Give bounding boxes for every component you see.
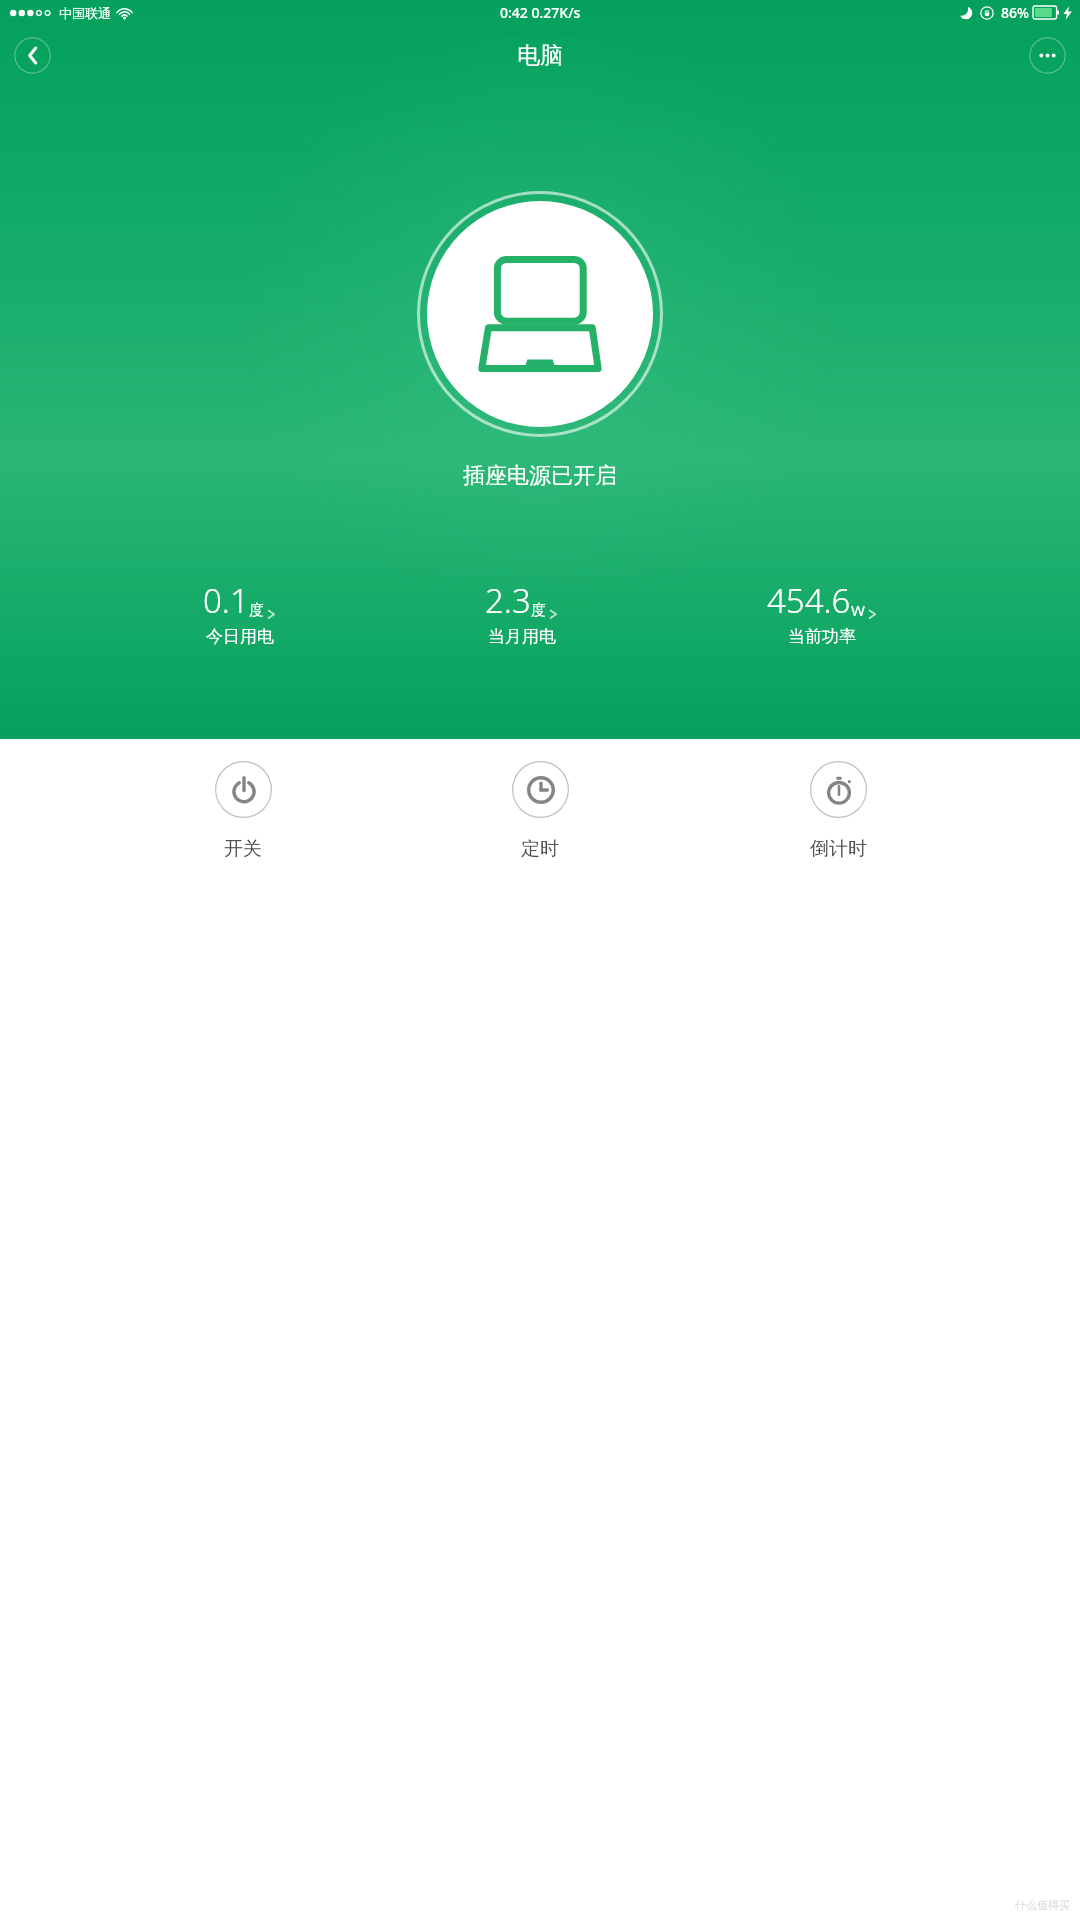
staticText: 插座电源已开启 xyxy=(463,462,617,490)
staticText: 0:42 0.27K/s xyxy=(500,3,581,22)
staticText: 2.3 xyxy=(485,578,531,623)
staticText: 电脑 xyxy=(517,41,563,70)
button[interactable]: Back xyxy=(14,37,51,74)
button[interactable]: 当月用电 xyxy=(479,576,564,649)
staticText: 什么值得买 xyxy=(1015,1898,1070,1912)
staticText: 今日用电 xyxy=(206,626,274,647)
button[interactable]: Timer xyxy=(485,761,595,861)
staticText: 454.6 xyxy=(767,578,851,623)
button[interactable]: Toggle power xyxy=(417,191,663,437)
staticText: 度 xyxy=(531,601,546,620)
button[interactable]: 当前功率 xyxy=(761,576,883,649)
staticText: 当月用电 xyxy=(488,626,556,647)
button[interactable]: Power switch xyxy=(188,761,298,861)
staticText: 倒计时 xyxy=(810,837,867,861)
staticText: 度 xyxy=(249,601,264,620)
staticText: 中国联通 xyxy=(59,5,111,21)
staticText: 86% xyxy=(1001,3,1029,22)
staticText: 当前功率 xyxy=(788,626,856,647)
staticText: 0.1 xyxy=(203,578,249,623)
button[interactable]: More options xyxy=(1029,37,1066,74)
button[interactable]: 今日用电 xyxy=(197,576,282,649)
staticText: 定时 xyxy=(521,837,559,861)
staticText: W xyxy=(851,600,865,620)
staticText: 开关 xyxy=(224,837,262,861)
button[interactable]: Countdown xyxy=(783,761,893,861)
